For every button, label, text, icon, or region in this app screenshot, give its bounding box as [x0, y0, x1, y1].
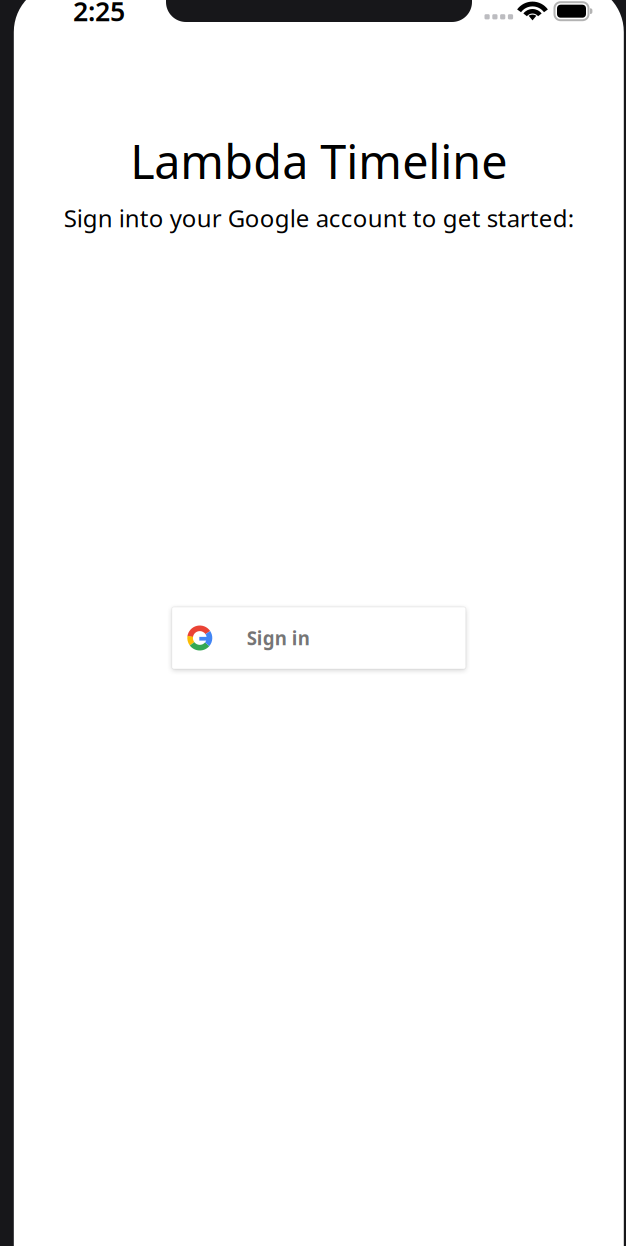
- staticText: 2:25: [73, 0, 125, 29]
- staticText: Sign in: [247, 626, 310, 650]
- staticText: Sign into your Google account to get sta…: [64, 202, 574, 234]
- staticText: Lambda Timeline: [130, 130, 507, 192]
- button[interactable]: Sign in: [172, 607, 466, 669]
